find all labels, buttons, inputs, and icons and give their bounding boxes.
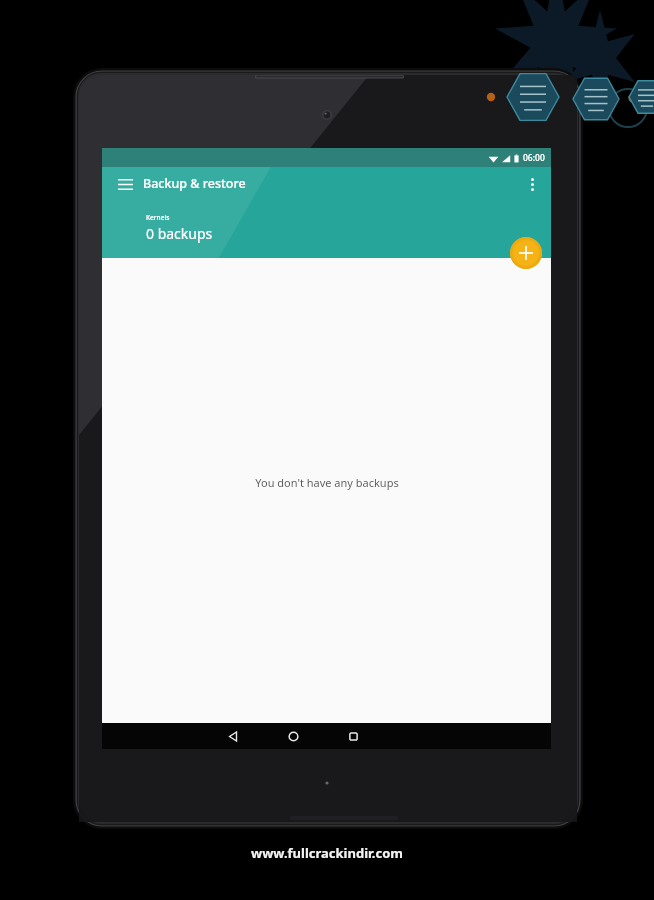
staticText: Backup & restore bbox=[143, 175, 246, 192]
button[interactable]: Recents bbox=[340, 723, 366, 749]
staticText: www.fullcrackindir.com bbox=[251, 844, 403, 862]
button[interactable]: Open navigation drawer bbox=[110, 169, 140, 199]
staticText: You don't have any backups bbox=[255, 475, 399, 490]
staticText: 0 backups bbox=[146, 224, 213, 243]
staticText: 06:00 bbox=[523, 152, 545, 164]
button[interactable]: More options bbox=[518, 170, 546, 198]
staticText: Kernels bbox=[146, 213, 170, 222]
button[interactable]: Add backup bbox=[510, 237, 542, 269]
button[interactable]: Back bbox=[220, 723, 246, 749]
button[interactable]: Home bbox=[280, 723, 306, 749]
